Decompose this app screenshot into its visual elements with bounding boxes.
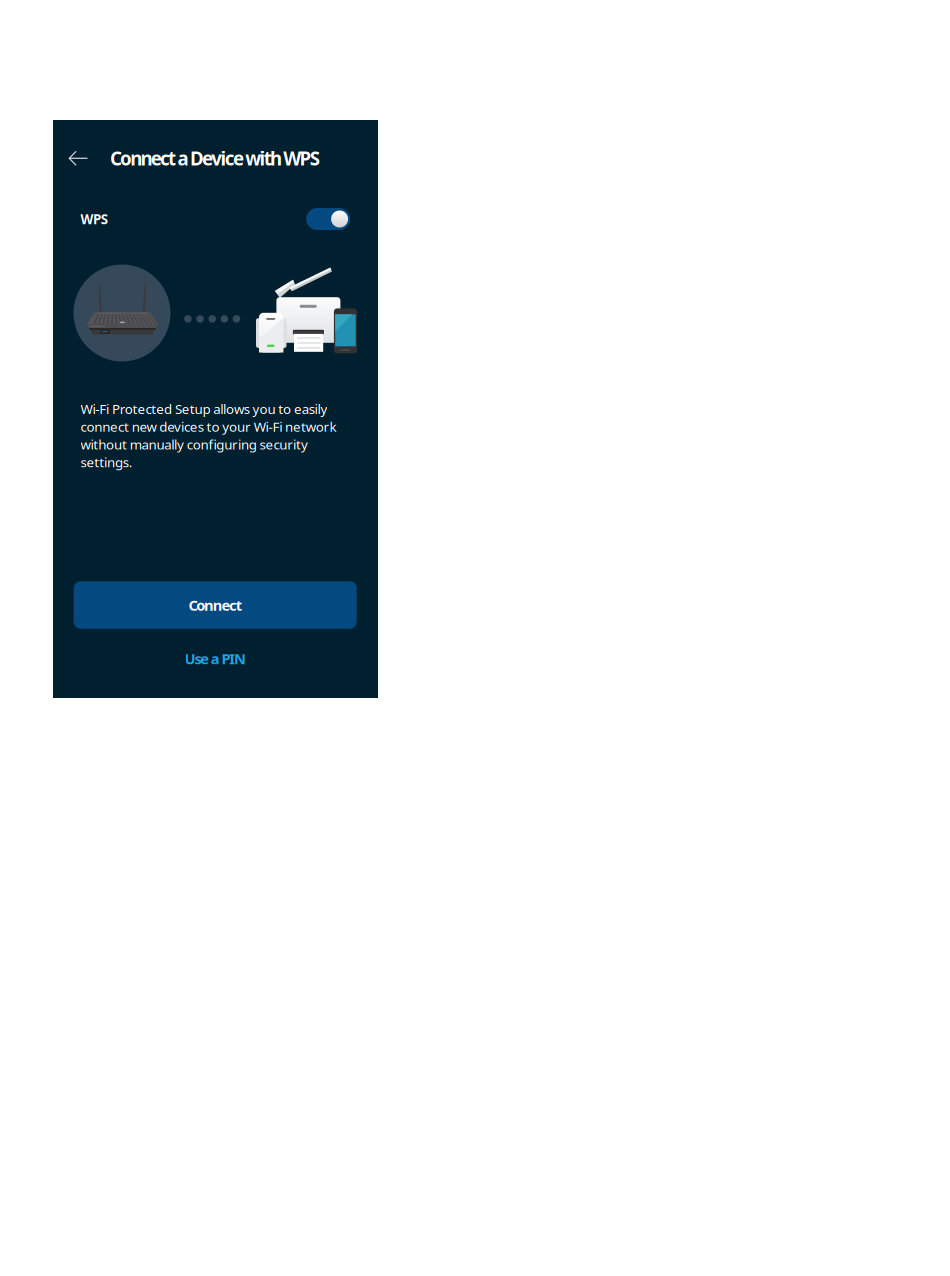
staticText: Connect a Device with WPS — [110, 146, 320, 171]
staticText: WPS — [80, 210, 108, 228]
button[interactable]: Back — [53, 120, 378, 698]
staticText: Use a PIN — [185, 649, 246, 668]
staticText: Wi-Fi Protected Setup allows you to easi… — [80, 400, 336, 471]
button[interactable]: Use a PIN — [53, 120, 378, 698]
button[interactable]: Connect — [53, 120, 378, 698]
button[interactable]: WPS — [53, 120, 378, 698]
staticText: Connect — [189, 595, 242, 615]
